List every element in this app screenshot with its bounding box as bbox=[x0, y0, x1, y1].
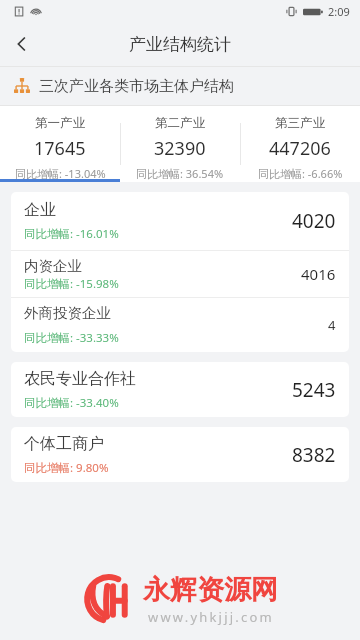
staticText: 同比增幅: -6.66% bbox=[258, 166, 343, 181]
button[interactable]: 企业 bbox=[11, 192, 349, 250]
staticText: 同比增幅: -33.33% bbox=[24, 330, 119, 346]
staticText: 同比增幅: -13.04% bbox=[15, 166, 106, 181]
staticText: 同比增幅: 36.54% bbox=[136, 166, 224, 181]
staticText: 同比增幅: -33.40% bbox=[24, 395, 119, 411]
button[interactable]: 个体工商户 bbox=[11, 427, 349, 482]
staticText: 外商投资企业 bbox=[24, 304, 111, 322]
staticText: 企业 bbox=[24, 200, 56, 220]
staticText: 32390 bbox=[154, 136, 206, 161]
staticText: 4020 bbox=[292, 208, 336, 234]
staticText: 同比增幅: -16.01% bbox=[24, 226, 119, 242]
staticText: 第一产业 bbox=[35, 115, 85, 131]
staticText: 第二产业 bbox=[155, 115, 205, 131]
button[interactable]: 农民专业合作社 bbox=[11, 362, 349, 417]
button[interactable]: 外商投资企业 bbox=[11, 298, 349, 352]
button[interactable]: Back bbox=[0, 22, 44, 66]
button[interactable]: 第二产业 bbox=[120, 106, 240, 182]
staticText: 农民专业合作社 bbox=[24, 369, 136, 389]
staticText: 永辉资源网 bbox=[143, 573, 278, 607]
staticText: 4016 bbox=[301, 264, 336, 284]
staticText: 2:09 bbox=[328, 4, 350, 19]
staticText: 5243 bbox=[292, 377, 336, 403]
staticText: 同比增幅: 9.80% bbox=[24, 460, 109, 476]
staticText: 个体工商户 bbox=[24, 434, 104, 454]
button[interactable]: 第一产业 bbox=[0, 106, 120, 182]
staticText: 447206 bbox=[269, 136, 331, 161]
staticText: 产业结构统计 bbox=[129, 34, 231, 55]
staticText: 三次产业各类市场主体户结构 bbox=[39, 77, 234, 96]
staticText: 同比增幅: -15.98% bbox=[24, 276, 119, 292]
staticText: 17645 bbox=[34, 136, 86, 161]
button[interactable]: 内资企业 bbox=[11, 251, 349, 297]
button[interactable]: 第三产业 bbox=[240, 106, 360, 182]
staticText: 8382 bbox=[292, 442, 336, 468]
staticText: 内资企业 bbox=[24, 257, 82, 275]
staticText: 4 bbox=[328, 316, 336, 334]
staticText: www.yhkjjj.com bbox=[148, 608, 274, 626]
staticText: 第三产业 bbox=[275, 115, 325, 131]
